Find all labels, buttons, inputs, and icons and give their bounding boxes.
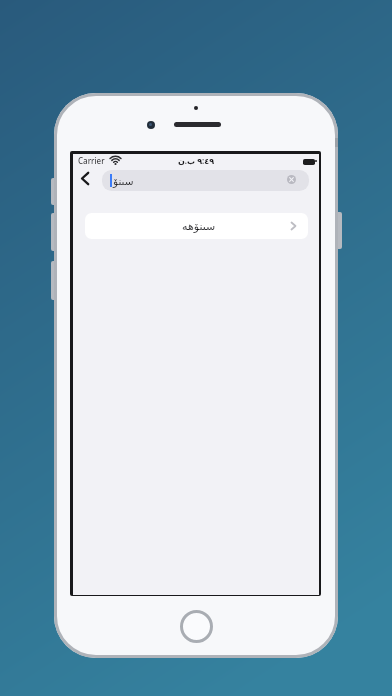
staticText: سىنۆھە <box>182 220 216 233</box>
staticText: Carrier <box>78 155 105 166</box>
staticText: ٩:٤٩ ب.ن <box>178 155 215 166</box>
staticText: سىنۆ <box>113 175 134 187</box>
